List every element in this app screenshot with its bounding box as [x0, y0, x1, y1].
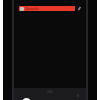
button[interactable]: Edit	[77, 6, 82, 11]
staticText: Search	[26, 6, 39, 11]
button[interactable]: Search	[19, 6, 75, 11]
button[interactable]	[22, 98, 31, 100]
